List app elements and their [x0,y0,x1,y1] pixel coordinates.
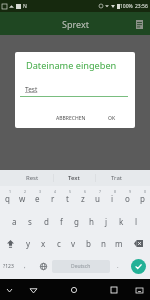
button[interactable]: 2 [15,186,30,209]
staticText: j [105,216,108,227]
staticText: 100% [120,3,133,10]
staticText: f [60,216,63,227]
button[interactable]: ?123 [0,255,16,278]
staticText: 4 [54,189,57,194]
button[interactable]: j [99,209,114,232]
button[interactable]: h [84,209,99,232]
staticText: ?123 [3,263,14,270]
staticText: 1 [9,189,12,194]
button[interactable]: Text [53,170,95,186]
staticText: , [24,262,26,270]
staticText: Test [25,85,38,94]
staticText: i [111,193,114,204]
staticText: d [44,216,49,227]
button[interactable]: 9 [120,186,135,209]
button[interactable]: Change language [34,255,52,278]
staticText: Text [68,174,80,182]
button[interactable]: g [69,209,84,232]
staticText: x [41,238,46,249]
staticText: 7 [99,189,102,194]
button[interactable]: List [132,17,146,31]
button[interactable]: Switch keyboard [133,284,145,296]
staticText: 3 [39,189,42,194]
staticText: u [95,193,100,204]
staticText: Dateiname eingeben [26,59,117,72]
button[interactable]: 0 [135,186,150,209]
staticText: N [23,3,27,10]
staticText: s [28,216,32,227]
button[interactable]: 4 [45,186,60,209]
staticText: m [115,238,123,249]
staticText: OK [108,115,116,122]
button[interactable]: f [54,209,69,232]
button[interactable]: b [81,232,96,255]
button[interactable]: 7 [90,186,105,209]
button[interactable]: x [36,232,51,255]
button[interactable]: Backspace [126,232,150,255]
staticText: Trat [111,174,122,182]
button[interactable]: y [21,232,36,255]
staticText: 0 [144,189,147,194]
button[interactable]: Trat [95,170,137,186]
button[interactable]: n [96,232,111,255]
staticText: 6 [84,189,87,194]
staticText: n [101,238,106,249]
button[interactable]: 5 [60,186,75,209]
staticText: g [74,216,79,227]
button[interactable]: OK [104,111,120,126]
button[interactable]: a [6,209,22,232]
staticText: q [5,193,10,204]
staticText: e [35,193,40,204]
staticText: 23:56 [135,3,148,10]
staticText: w [19,193,26,204]
button[interactable]: l [129,209,144,232]
button[interactable]: Shift [0,232,21,255]
staticText: o [125,193,130,204]
staticText: y [26,238,31,249]
button[interactable]: Back [27,284,39,296]
button[interactable]: Home [68,284,80,296]
button[interactable]: Hide keyboard [3,284,15,296]
button[interactable]: 8 [105,186,120,209]
staticText: h [89,216,94,227]
staticText: Rest [26,174,39,182]
button[interactable]: k [114,209,129,232]
staticText: ABBRECHEN [56,115,86,122]
button[interactable]: Deutsch [52,260,110,273]
button[interactable]: Recents [108,284,120,296]
staticText: Deutsch [71,263,91,270]
button[interactable]: 6 [75,186,90,209]
staticText: r [51,193,55,204]
staticText: a [12,216,17,227]
staticText: v [71,238,76,249]
button[interactable]: m [111,232,126,255]
button[interactable]: 1 [0,186,15,209]
staticText: 8 [114,189,117,194]
button[interactable]: d [38,209,54,232]
button[interactable]: ABBRECHEN [52,111,90,126]
staticText: k [119,216,124,227]
staticText: Sprext [62,18,89,30]
button[interactable]: s [22,209,38,232]
staticText: b [86,238,91,249]
staticText: . [117,262,119,270]
button[interactable]: c [51,232,66,255]
button[interactable]: Comma [16,255,34,278]
staticText: 9 [129,189,132,194]
button[interactable]: 3 [30,186,45,209]
button[interactable]: Rest [11,170,53,186]
button[interactable]: v [66,232,81,255]
staticText: 2 [24,189,27,194]
staticText: l [135,216,138,227]
staticText: p [140,193,145,204]
staticText: z [81,193,85,204]
staticText: t [66,193,69,204]
staticText: c [57,238,61,249]
staticText: 5 [69,189,72,194]
button[interactable]: Enter [126,255,150,278]
